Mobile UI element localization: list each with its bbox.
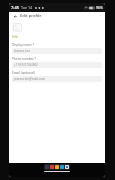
button[interactable]: Email (optional) (12, 71, 102, 82)
staticText: Edit (12, 35, 18, 39)
button[interactable]: Change photo (12, 22, 23, 34)
button[interactable]: App five (65, 165, 69, 169)
button[interactable]: App two (50, 165, 54, 169)
staticText: 7:45 (11, 5, 19, 10)
button[interactable]: Display name * (12, 43, 102, 54)
button[interactable]: Phone number * (12, 57, 102, 68)
staticText: Tue 14 (21, 5, 33, 10)
staticText: +1 555 0134 882 (14, 63, 38, 67)
staticText: Display name * (12, 43, 35, 47)
staticText: Email (optional) (12, 71, 35, 75)
staticText: Phone number * (12, 57, 37, 61)
button[interactable]: App four (60, 165, 64, 169)
staticText: Joanna Lee (14, 49, 30, 53)
staticText: joanna.lee@mail.com (14, 77, 46, 81)
button[interactable]: Back (12, 13, 18, 19)
button[interactable]: App three (55, 165, 59, 169)
staticText: Edit profile (20, 13, 42, 19)
staticText: 96% (96, 5, 103, 10)
